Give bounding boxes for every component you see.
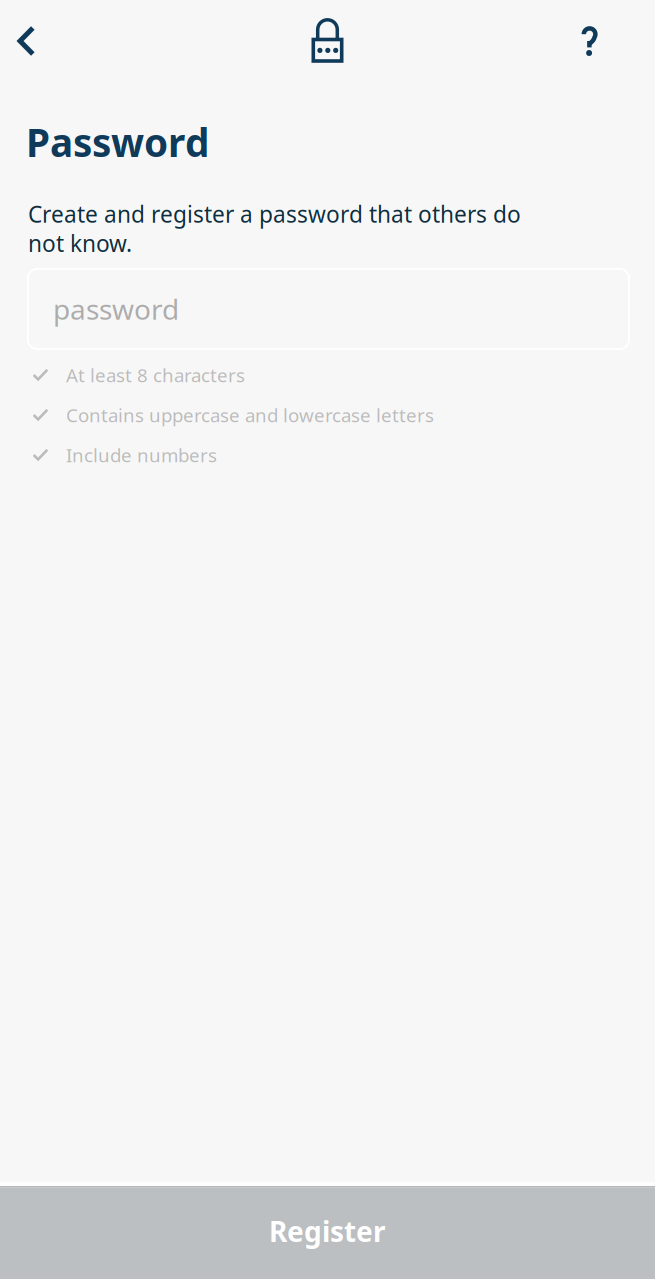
staticText: Create and register a password that othe… xyxy=(28,199,521,229)
staticText: Register xyxy=(269,1213,386,1250)
staticText: Include numbers xyxy=(66,443,217,467)
staticText: password xyxy=(53,290,179,328)
button[interactable]: Back xyxy=(0,10,54,72)
button[interactable]: Password field xyxy=(28,269,629,349)
staticText: Password xyxy=(26,116,209,168)
staticText: At least 8 characters xyxy=(66,363,245,387)
button[interactable]: Help xyxy=(563,11,617,73)
staticText: not know. xyxy=(28,228,132,258)
staticText: Contains uppercase and lowercase letters xyxy=(66,403,434,427)
button[interactable]: Register xyxy=(0,1187,655,1279)
